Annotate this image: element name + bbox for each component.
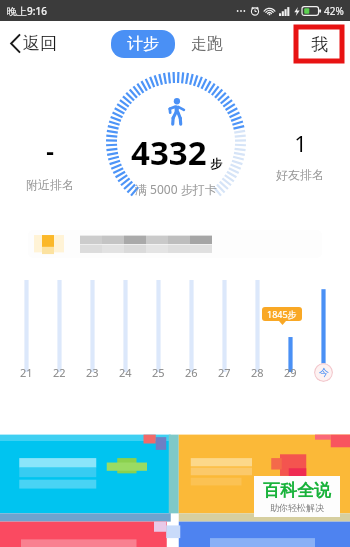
other: Walking [166, 98, 187, 125]
button[interactable]: 今 [314, 363, 333, 382]
staticText: 今 [319, 366, 329, 379]
button[interactable]: - [8, 134, 92, 192]
staticText: 26 [185, 365, 198, 380]
button[interactable]: 走跑 [187, 30, 227, 58]
staticText: 4332 [131, 130, 207, 175]
staticText: 27 [218, 365, 231, 380]
staticText: 好友排名 [276, 167, 324, 182]
button[interactable]: 我 [296, 27, 342, 61]
staticText: 我 [311, 34, 328, 55]
staticText: 晚上9:16 [7, 4, 47, 18]
staticText: 22 [53, 365, 66, 380]
staticText: 21 [20, 365, 33, 380]
staticText: 走跑 [191, 34, 223, 54]
button[interactable]: 百科全说 [0, 420, 350, 547]
staticText: 附近排名 [26, 177, 74, 192]
staticText: 23 [86, 365, 99, 380]
staticText: 28 [251, 365, 264, 380]
staticText: 1845步 [267, 308, 297, 320]
staticText: 助你轻松解决 [270, 502, 324, 513]
button[interactable]: 1 [258, 128, 342, 182]
staticText: 满 5000 步打卡 [135, 181, 217, 197]
staticText: 24 [119, 365, 132, 380]
button[interactable] [28, 230, 322, 258]
staticText: 返回 [23, 33, 57, 54]
staticText: 1 [294, 128, 307, 158]
staticText: 百科全说 [263, 480, 331, 501]
button[interactable]: 满 5000 步打卡 [129, 180, 223, 198]
button[interactable]: 返回 [8, 29, 59, 58]
staticText: 25 [152, 365, 165, 380]
staticText: 步 [210, 156, 222, 171]
staticText: 29 [284, 365, 297, 380]
button[interactable]: 计步 [111, 30, 175, 58]
staticText: 计步 [127, 34, 159, 54]
staticText: 42% [324, 4, 344, 18]
staticText: - [46, 134, 54, 167]
